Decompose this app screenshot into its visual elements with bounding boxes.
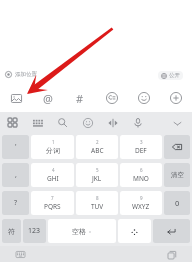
button[interactable]: 添加位置 xyxy=(5,71,37,78)
button[interactable]: 4 xyxy=(31,163,74,187)
button[interactable]: Search xyxy=(50,112,75,133)
staticText: 8 xyxy=(96,195,99,201)
button[interactable]: Add image xyxy=(0,84,32,112)
button[interactable]: 公开 xyxy=(158,71,183,80)
staticText: 3 xyxy=(140,139,143,145)
staticText: PQRS xyxy=(44,202,61,211)
staticText: 0 xyxy=(175,198,180,208)
staticText: 符 xyxy=(8,227,15,236)
staticText: ? xyxy=(14,198,18,208)
staticText: ' xyxy=(15,142,17,152)
button[interactable]: 8 xyxy=(76,191,118,215)
staticText: WXYZ xyxy=(132,202,150,211)
staticText: ABC xyxy=(91,146,104,155)
staticText: 添加位置 xyxy=(15,71,37,78)
button[interactable] xyxy=(118,219,151,243)
staticText: , xyxy=(15,170,17,180)
staticText: TUV xyxy=(91,202,104,211)
button[interactable]: More xyxy=(160,84,192,112)
staticText: 9 xyxy=(140,195,143,201)
button[interactable]: Recent apps xyxy=(165,248,178,261)
staticText: 1 xyxy=(52,139,55,145)
staticText: 123 xyxy=(28,226,41,236)
button[interactable]: Voice input xyxy=(125,112,150,133)
staticText: 6 xyxy=(140,167,143,173)
button[interactable] xyxy=(153,219,190,243)
button[interactable]: Move cursor xyxy=(100,112,125,133)
button[interactable]: Emoji xyxy=(128,84,160,112)
button[interactable]: ? xyxy=(2,191,29,215)
button[interactable]: Keyboard layouts xyxy=(0,112,25,133)
button[interactable]: 清空 xyxy=(164,163,190,187)
button[interactable]: 3 xyxy=(120,135,162,159)
button[interactable]: ' xyxy=(2,135,29,159)
button[interactable]: Emoji xyxy=(75,112,100,133)
button[interactable]: 符 xyxy=(2,219,21,243)
button[interactable]: Topic xyxy=(64,84,96,112)
button[interactable]: 0 xyxy=(164,191,190,215)
staticText: 4 xyxy=(52,167,55,173)
staticText: 2 xyxy=(96,139,99,145)
button[interactable]: 123 xyxy=(23,219,46,243)
staticText: 7 xyxy=(51,195,54,201)
button[interactable]: , xyxy=(2,163,29,187)
button[interactable]: Hide keyboard xyxy=(14,248,27,261)
button[interactable]: 2 xyxy=(76,135,118,159)
button[interactable]: 空格 xyxy=(48,219,116,243)
button[interactable]: 7 xyxy=(31,191,74,215)
staticText: 公开 xyxy=(169,72,180,79)
staticText: # xyxy=(76,91,84,106)
staticText: JKL xyxy=(92,174,102,183)
button[interactable]: Collapse keyboard xyxy=(170,116,184,130)
button[interactable]: Mention xyxy=(32,84,64,112)
button[interactable]: 6 xyxy=(120,163,162,187)
staticText: @ xyxy=(43,91,53,106)
staticText: DEF xyxy=(135,146,147,155)
staticText: MNO xyxy=(133,174,149,183)
button[interactable]: 1 xyxy=(31,135,74,159)
button[interactable]: Backspace xyxy=(164,135,190,159)
button[interactable]: Keyboard xyxy=(25,112,50,133)
button[interactable]: Sticker xyxy=(96,84,128,112)
button[interactable]: 5 xyxy=(76,163,118,187)
staticText: 空格 xyxy=(72,227,86,236)
staticText: 清空 xyxy=(171,171,184,179)
staticText: 5 xyxy=(96,167,99,173)
staticText: GHI xyxy=(47,174,59,183)
staticText: 分词 xyxy=(46,146,60,155)
button[interactable]: 9 xyxy=(120,191,162,215)
